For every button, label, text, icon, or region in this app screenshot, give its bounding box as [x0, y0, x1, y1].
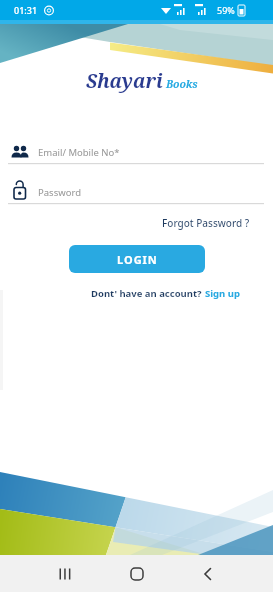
button[interactable]: Email/ Mobile No*: [8, 140, 264, 164]
staticText: Shayari: [86, 68, 163, 94]
staticText: LOGIN: [117, 252, 158, 267]
button[interactable]: [45, 555, 85, 592]
staticText: 01:31: [14, 4, 38, 16]
button[interactable]: Sign up: [205, 287, 240, 300]
button[interactable]: [117, 555, 157, 592]
button[interactable]: LOGIN: [69, 245, 205, 273]
staticText: Books: [166, 77, 198, 91]
staticText: Email/ Mobile No*: [38, 146, 120, 159]
button[interactable]: Forgot Password ?: [162, 216, 250, 230]
button[interactable]: Password: [8, 180, 264, 204]
staticText: Forgot Password ?: [162, 216, 250, 230]
staticText: Dont' have an account?: [91, 287, 205, 300]
staticText: Password: [38, 186, 81, 199]
staticText: 59%: [217, 4, 235, 16]
staticText: Sign up: [205, 287, 240, 300]
button[interactable]: [188, 555, 228, 592]
